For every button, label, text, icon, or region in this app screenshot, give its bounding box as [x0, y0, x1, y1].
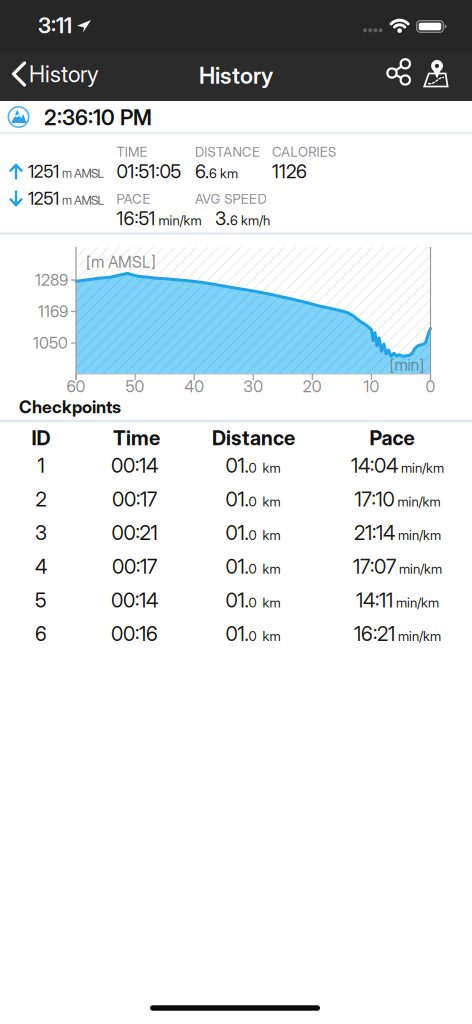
staticText: 2 — [35, 487, 46, 511]
staticText: 3 — [35, 521, 47, 545]
staticText: Pace — [369, 426, 414, 450]
staticText: 17:10 min/km — [354, 487, 440, 511]
staticText: 3.6 km/h — [215, 207, 270, 229]
staticText: AVG SPEED — [195, 191, 266, 207]
staticText: 1251 — [28, 161, 59, 182]
staticText: 6 — [35, 622, 47, 646]
button[interactable] — [384, 58, 418, 92]
staticText: Time — [113, 426, 160, 450]
staticText: 14:04 min/km — [351, 454, 444, 477]
staticText: 1 — [37, 454, 44, 477]
staticText: 5 — [35, 588, 47, 612]
staticText: 00:17 — [112, 555, 157, 578]
staticText: 0 — [425, 377, 435, 396]
staticText: 01.0 km — [225, 555, 280, 578]
button[interactable]: History — [0, 53, 100, 97]
staticText: [min] — [389, 356, 424, 374]
staticText: History — [199, 62, 273, 89]
staticText: 01.0 km — [225, 521, 280, 545]
staticText: 2:36:10 PM — [44, 105, 152, 130]
staticText: 21:14 min/km — [354, 521, 441, 545]
staticText: 3:11 — [38, 13, 72, 38]
staticText: 14:11 min/km — [356, 588, 439, 612]
staticText: 01.0 km — [225, 588, 280, 612]
staticText: 01.0 km — [225, 454, 280, 477]
staticText: 6.6 km — [195, 160, 238, 182]
staticText: 00:14 — [111, 588, 158, 612]
staticText: 1050 — [33, 334, 68, 352]
staticText: History — [29, 61, 99, 87]
staticText: 00:14 — [111, 454, 158, 477]
staticText: m AMSL — [62, 166, 104, 181]
staticText: 40 — [184, 377, 204, 396]
staticText: 1169 — [38, 302, 68, 321]
staticText: m AMSL — [62, 193, 104, 208]
staticText: Checkpoints — [19, 397, 121, 417]
staticText: 01.0 km — [225, 487, 280, 511]
staticText: 30 — [243, 377, 263, 396]
button[interactable] — [419, 58, 453, 92]
staticText: TIME — [116, 144, 147, 160]
staticText: 16:51 min/km — [116, 207, 201, 229]
staticText: Distance — [212, 426, 295, 450]
staticText: 50 — [126, 377, 145, 396]
staticText: 4 — [35, 555, 47, 578]
staticText: 01.0 km — [225, 622, 280, 646]
staticText: 00:21 — [111, 521, 157, 545]
staticText: PACE — [116, 191, 150, 207]
staticText: CALORIES — [272, 144, 336, 160]
staticText: [m AMSL] — [86, 253, 156, 271]
staticText: DISTANCE — [195, 144, 260, 160]
staticText: 01:51:05 — [116, 160, 181, 182]
staticText: 60 — [66, 377, 85, 396]
staticText: 10 — [363, 377, 379, 396]
staticText: 1251 — [28, 188, 59, 209]
staticText: ID — [31, 426, 50, 450]
staticText: 17:07 min/km — [353, 555, 442, 578]
staticText: 16:21 min/km — [354, 622, 441, 646]
staticText: 20 — [303, 377, 322, 396]
staticText: 00:16 — [111, 622, 158, 646]
staticText: 1126 — [272, 160, 307, 182]
staticText: 00:17 — [112, 487, 157, 511]
staticText: 1289 — [35, 271, 68, 289]
